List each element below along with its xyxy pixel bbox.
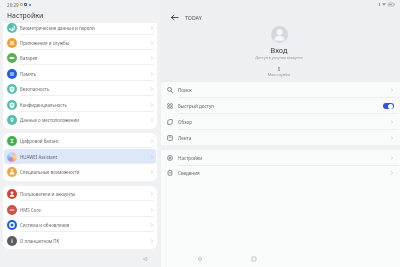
staticText: 0 (219, 66, 339, 72)
button[interactable]: HMS Core (3, 202, 157, 217)
staticText: Приложения и службы (20, 40, 70, 46)
button[interactable]: Конфиденциальность (3, 97, 157, 112)
staticText: О планшетном ПК (20, 238, 60, 244)
button[interactable]: Биометрические данные и пароли (3, 23, 157, 35)
button[interactable]: Приложения и службы (3, 35, 157, 50)
button[interactable]: HUAWEI Assistant (3, 149, 157, 164)
staticText: Память (20, 71, 37, 77)
staticText: Поиск (178, 87, 192, 93)
staticText: HUAWEI Assistant (20, 154, 58, 160)
button[interactable]: Account avatar (271, 26, 288, 43)
button[interactable]: Настройки (161, 150, 400, 166)
button[interactable]: Home (194, 253, 206, 265)
staticText: Настройки (178, 155, 203, 161)
staticText: Мои службы (219, 72, 339, 77)
staticText: Батарея (20, 55, 38, 61)
button[interactable]: Данные о местоположении (3, 112, 157, 127)
button[interactable]: Пользователи и аккаунты (3, 186, 157, 201)
button[interactable]: Цифровой баланс (3, 133, 157, 148)
button[interactable]: Back (139, 253, 151, 265)
button[interactable]: Back (169, 12, 180, 23)
button[interactable]: Поиск (161, 82, 400, 98)
button[interactable]: Специальные возможности (3, 164, 157, 179)
staticText: Настройки (7, 11, 44, 20)
staticText: Данные о местоположении (20, 117, 80, 123)
staticText: 20:29 (7, 2, 19, 8)
staticText: HMS Core (20, 207, 41, 213)
staticText: Безопасность (20, 86, 50, 92)
button[interactable]: Батарея (3, 50, 157, 65)
button[interactable]: О планшетном ПК (3, 233, 157, 248)
staticText: Вход (219, 45, 339, 55)
staticText: Специальные возможности (20, 169, 80, 175)
staticText: Цифровой баланс (20, 138, 59, 144)
staticText: Система и обновления (20, 222, 70, 228)
button[interactable]: Обзор (161, 114, 400, 130)
button[interactable]: Система и обновления (3, 217, 157, 232)
button[interactable]: Сведения (161, 165, 400, 181)
staticText: Доступ к услугам аккаунта (219, 55, 339, 60)
button[interactable]: Память (3, 66, 157, 81)
button[interactable]: Безопасность (3, 81, 157, 96)
staticText: Сведения (178, 170, 200, 176)
staticText: Быстрый доступ (178, 103, 215, 109)
button[interactable]: Лента (161, 130, 400, 146)
staticText: Пользователи и аккаунты (20, 191, 76, 197)
staticText: Конфиденциальность (20, 102, 67, 108)
button[interactable]: Recents (248, 253, 260, 265)
staticText: TODAY (185, 14, 202, 21)
button[interactable]: Быстрый доступ (161, 98, 400, 114)
staticText: Лента (178, 135, 192, 141)
staticText: Биометрические данные и пароли (20, 25, 95, 31)
staticText: Обзор (178, 119, 193, 125)
